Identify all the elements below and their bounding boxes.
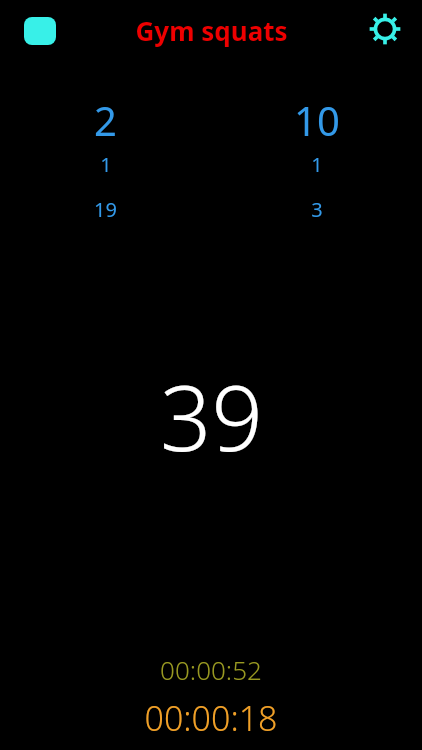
staticText: 39: [160, 355, 263, 465]
staticText: 19: [94, 196, 117, 223]
button[interactable]: 39: [0, 355, 422, 465]
staticText: 3: [311, 196, 323, 223]
staticText: 2: [94, 93, 117, 147]
staticText: 1: [311, 151, 323, 178]
button[interactable]: Start or stop: [24, 17, 56, 45]
button[interactable]: Settings: [364, 8, 406, 50]
staticText: 00:00:52: [160, 652, 262, 687]
staticText: 1: [100, 151, 112, 178]
button[interactable]: 10: [211, 93, 422, 223]
staticText: Gym squats: [135, 13, 288, 48]
button[interactable]: 2: [0, 93, 211, 223]
staticText: 00:00:18: [144, 695, 278, 741]
staticText: 10: [294, 93, 340, 147]
